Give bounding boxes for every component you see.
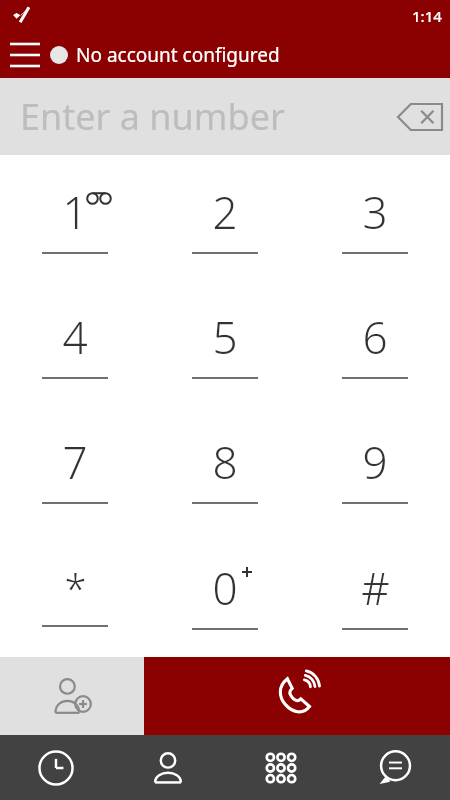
- staticText: #: [361, 558, 390, 618]
- button[interactable]: Messages: [337, 735, 450, 800]
- button[interactable]: Contacts: [112, 735, 224, 800]
- staticText: *: [64, 561, 87, 615]
- button[interactable]: 7: [0, 405, 150, 531]
- button[interactable]: 8: [150, 405, 300, 531]
- button[interactable]: 4: [0, 280, 150, 405]
- staticText: 3: [362, 182, 388, 242]
- button[interactable]: 6: [300, 280, 450, 405]
- staticText: Enter a number: [20, 92, 285, 141]
- button[interactable]: 2: [150, 155, 300, 280]
- button[interactable]: *: [0, 531, 150, 657]
- staticText: 9: [362, 432, 388, 492]
- staticText: 7: [62, 432, 88, 492]
- button[interactable]: Call: [144, 657, 450, 735]
- button[interactable]: #: [300, 531, 450, 657]
- button[interactable]: Add contact: [0, 657, 144, 735]
- button[interactable]: Open navigation menu: [0, 32, 50, 78]
- button[interactable]: Dialpad: [224, 735, 337, 800]
- button[interactable]: No account configured: [50, 32, 450, 78]
- staticText: 2: [212, 182, 238, 242]
- button[interactable]: 3: [300, 155, 450, 280]
- staticText: 8: [212, 432, 238, 492]
- staticText: 6: [362, 307, 388, 367]
- button[interactable]: 0: [150, 531, 300, 657]
- button[interactable]: 5: [150, 280, 300, 405]
- staticText: No account configured: [76, 42, 280, 68]
- staticText: 0: [212, 558, 238, 618]
- staticText: 5: [212, 307, 238, 367]
- button[interactable]: Recent calls: [0, 735, 112, 800]
- staticText: 4: [62, 307, 88, 367]
- button[interactable]: Backspace: [390, 87, 450, 147]
- staticText: 1:14: [412, 6, 442, 26]
- button[interactable]: 1: [0, 155, 150, 280]
- staticText: 1: [62, 182, 88, 242]
- button[interactable]: 9: [300, 405, 450, 531]
